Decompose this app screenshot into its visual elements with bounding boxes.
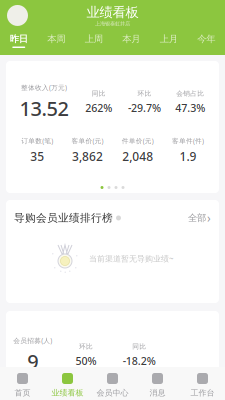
staticText: 整体收入(万元) <box>21 83 67 92</box>
button[interactable]: 消息 <box>135 373 180 398</box>
staticText: 3,862 <box>72 148 103 164</box>
button[interactable]: 工作台 <box>180 373 225 398</box>
button[interactable]: Profile <box>7 5 28 26</box>
staticText: 会员中心 <box>96 388 128 398</box>
staticText: 本周 <box>47 33 65 44</box>
staticText: -18.2% <box>123 354 156 368</box>
staticText: 会员招募(人) <box>13 336 52 345</box>
staticText: 业绩看板 <box>51 388 83 398</box>
staticText: 环比 <box>137 89 151 98</box>
button[interactable]: 本月 <box>112 33 150 48</box>
button[interactable]: 首页 <box>0 373 45 398</box>
staticText: -29.7% <box>128 101 161 115</box>
staticText: 上海银泰虹井店 <box>95 20 130 27</box>
staticText: 13.52 <box>19 95 68 121</box>
staticText: 上周 <box>85 33 103 44</box>
staticText: 上月 <box>160 33 178 44</box>
staticText: 9 <box>27 348 38 374</box>
staticText: 昨日 <box>10 33 28 44</box>
button[interactable]: 上月 <box>150 33 187 48</box>
staticText: › <box>207 210 211 226</box>
staticText: 今年 <box>197 33 215 44</box>
staticText: 同比 <box>132 342 146 351</box>
staticText: 同比 <box>92 89 106 98</box>
staticText: 会销占比 <box>176 89 204 98</box>
staticText: 客单价(元) <box>71 136 103 145</box>
staticText: 消息 <box>149 388 165 398</box>
staticText: 全部 <box>188 212 206 224</box>
staticText: 2,048 <box>122 148 153 164</box>
staticText: 当前渠道暂无导购业绩~ <box>89 253 174 264</box>
staticText: 262% <box>85 101 112 115</box>
staticText: 件单价(元) <box>122 136 154 145</box>
staticText: 47.3% <box>175 101 205 115</box>
staticText: 订单数(笔) <box>21 136 53 145</box>
staticText: 环比 <box>79 342 93 351</box>
staticText: 35 <box>30 148 44 164</box>
staticText: 工作台 <box>190 388 214 398</box>
staticText: 1.9 <box>179 148 196 164</box>
button[interactable]: 本周 <box>37 33 75 48</box>
staticText: 客单件(件) <box>172 136 204 145</box>
staticText: 50% <box>75 354 96 368</box>
button[interactable]: 上周 <box>75 33 112 48</box>
staticText: 业绩看板 <box>86 4 138 20</box>
staticText: 首页 <box>14 388 30 398</box>
button[interactable]: 今年 <box>187 33 225 48</box>
button[interactable]: 全部 <box>188 210 211 226</box>
staticText: 导购会员业绩排行榜 <box>14 211 113 224</box>
button[interactable]: 业绩看板 <box>45 373 90 398</box>
button[interactable]: 会员中心 <box>90 373 135 398</box>
staticText: 本月 <box>122 33 140 44</box>
button[interactable]: 昨日 <box>0 33 37 48</box>
